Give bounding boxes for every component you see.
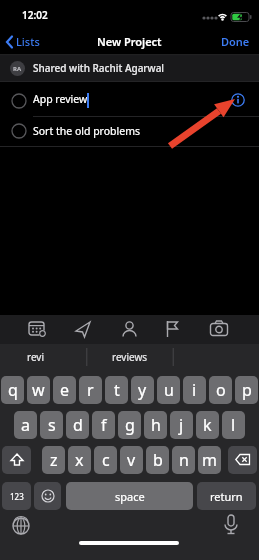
staticText: v (127, 449, 136, 471)
button[interactable]: Done (221, 34, 250, 49)
button[interactable]: m (198, 446, 221, 474)
button[interactable]: reviews (87, 342, 173, 372)
staticText: Shared with Rachit Agarwal (33, 61, 165, 75)
button[interactable] (228, 446, 257, 474)
staticText: c (102, 449, 110, 471)
button[interactable]: Lists (5, 34, 40, 49)
button[interactable]: v (120, 446, 143, 474)
button[interactable]: 123 (2, 482, 31, 510)
button[interactable]: e (53, 376, 76, 404)
staticText: x (75, 449, 84, 471)
button[interactable]: j (170, 411, 193, 439)
staticText: 123 (10, 491, 24, 502)
staticText: y (138, 379, 147, 401)
staticText: 12:02 (22, 8, 48, 22)
staticText: New Project (97, 34, 162, 49)
button[interactable]: return (197, 482, 256, 510)
staticText: Done (221, 34, 250, 49)
staticText: space (115, 489, 145, 504)
staticText: a (21, 414, 30, 436)
button[interactable]: p (235, 376, 258, 404)
staticText: z (50, 449, 58, 471)
staticText: t (114, 379, 120, 401)
button[interactable]: o (209, 376, 232, 404)
button[interactable] (228, 90, 248, 110)
staticText: k (203, 414, 212, 436)
staticText: o (216, 379, 226, 401)
staticText: b (153, 449, 163, 471)
staticText: u (164, 379, 174, 401)
staticText: Sort the old problems (33, 124, 141, 138)
staticText: h (151, 414, 161, 436)
staticText: r (87, 379, 94, 401)
button[interactable]: w (27, 376, 50, 404)
button[interactable]: r (79, 376, 102, 404)
button[interactable]: l (222, 411, 245, 439)
button[interactable]: RA (0, 55, 259, 81)
button[interactable]: c (94, 446, 117, 474)
button[interactable]: y (131, 376, 154, 404)
button[interactable]: Sort the old problems (0, 116, 259, 146)
button[interactable]: s (40, 411, 63, 439)
button[interactable]: i (183, 376, 206, 404)
staticText: d (73, 414, 83, 436)
staticText: g (125, 414, 135, 436)
staticText: App review (33, 92, 88, 106)
staticText: e (60, 379, 70, 401)
button[interactable]: h (144, 411, 167, 439)
button[interactable]: n (172, 446, 195, 474)
staticText: revi (27, 350, 45, 364)
button[interactable]: App review (0, 82, 259, 116)
button[interactable]: d (66, 411, 89, 439)
staticText: m (202, 449, 217, 471)
button[interactable]: a (14, 411, 37, 439)
staticText: l (231, 414, 236, 436)
staticText: w (32, 379, 45, 401)
button[interactable]: z (42, 446, 65, 474)
button[interactable]: k (196, 411, 219, 439)
button[interactable]: u (157, 376, 180, 404)
staticText: return (210, 489, 243, 504)
button[interactable]: q (1, 376, 24, 404)
button[interactable]: f (92, 411, 115, 439)
staticText: q (8, 379, 18, 401)
button[interactable] (34, 482, 61, 510)
button[interactable]: x (68, 446, 91, 474)
button[interactable]: t (105, 376, 128, 404)
button[interactable]: b (146, 446, 169, 474)
button[interactable]: revi (0, 342, 72, 372)
button[interactable]: g (118, 411, 141, 439)
staticText: i (192, 379, 197, 401)
staticText: p (242, 379, 252, 401)
staticText: RA (13, 65, 22, 73)
staticText: Lists (16, 34, 40, 49)
button[interactable]: space (66, 482, 193, 510)
button[interactable] (2, 446, 31, 474)
staticText: n (179, 449, 189, 471)
staticText: j (179, 414, 184, 436)
staticText: s (48, 414, 56, 436)
staticText: f (101, 414, 107, 436)
staticText: reviews (112, 350, 148, 364)
